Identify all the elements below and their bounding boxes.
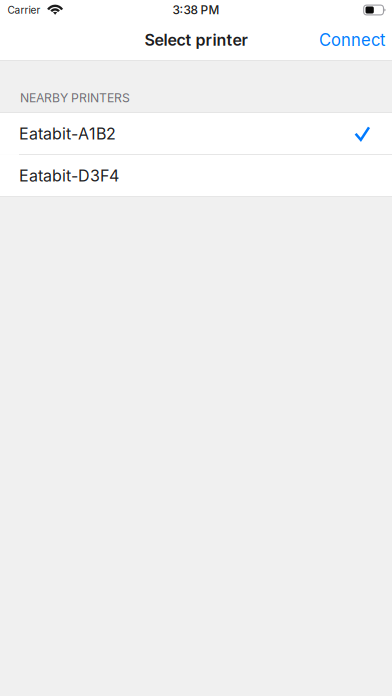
staticText: Connect [319,30,385,50]
staticText: Select printer [144,30,247,50]
staticText: NEARBY PRINTERS [20,90,130,105]
staticText: 3:38 PM [172,3,219,17]
button[interactable]: Eatabit-A1B2 [0,113,392,154]
staticText: Eatabit-D3F4 [19,166,119,185]
staticText: Carrier [7,4,40,16]
button[interactable]: Eatabit-D3F4 [0,155,392,196]
button[interactable]: Connect [312,21,392,59]
staticText: Eatabit-A1B2 [19,124,116,143]
